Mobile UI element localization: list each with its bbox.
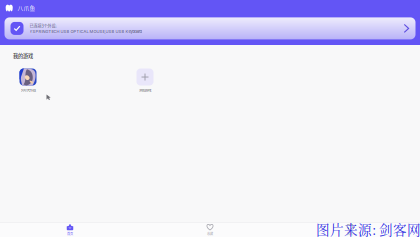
button[interactable]: 300大作战	[13, 68, 43, 92]
staticText: 八爪鱼	[17, 4, 35, 12]
staticText: 添加游戏	[139, 87, 151, 92]
staticText: YSPRINGTECH USB OPTICAL MOUSE,USB USB Ke…	[29, 29, 141, 34]
button[interactable]: 我的	[280, 223, 420, 237]
button[interactable]: 已连接3个外设:	[4, 17, 415, 39]
button[interactable]: 首页	[0, 223, 140, 237]
button[interactable]: 添加游戏	[130, 68, 160, 92]
staticText: 图片来源: 剑客网	[316, 219, 420, 237]
button[interactable]: 收藏	[140, 223, 280, 237]
staticText: 300大作战	[20, 87, 35, 92]
staticText: 我的游戏	[13, 52, 33, 59]
staticText: 收藏	[207, 231, 213, 236]
staticText: 已连接3个外设:	[29, 23, 56, 29]
staticText: 首页	[67, 231, 73, 236]
staticText: 我的	[347, 231, 353, 236]
